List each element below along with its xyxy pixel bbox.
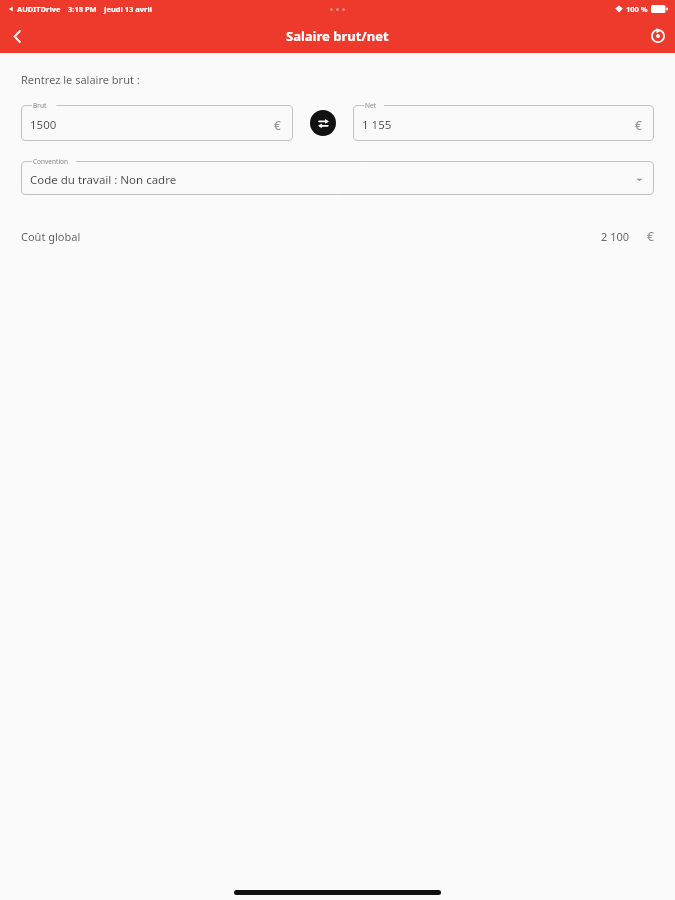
staticText: € — [274, 117, 281, 133]
staticText: 1500 — [30, 117, 57, 133]
staticText: Convention — [33, 157, 69, 166]
button[interactable]: Convention — [21, 161, 654, 195]
staticText: 1 155 — [362, 117, 392, 133]
button[interactable]: Retour — [0, 19, 34, 53]
staticText: € — [635, 117, 642, 133]
staticText: Code du travail : Non cadre — [30, 172, 177, 188]
staticText: Salaire brut/net — [286, 27, 389, 45]
staticText: 3:18 PM — [68, 4, 97, 14]
staticText: AUDITDrive — [17, 4, 61, 14]
staticText: Jeudi 13 avril — [104, 4, 152, 14]
staticText: Brut — [33, 101, 47, 110]
staticText: 100 % — [626, 4, 648, 14]
button[interactable]: Net — [353, 105, 654, 141]
button[interactable]: Inverser brut et net — [310, 110, 336, 136]
staticText: Net — [365, 101, 376, 110]
staticText: Rentrez le salaire brut : — [21, 72, 140, 87]
staticText: Coût global — [21, 229, 81, 244]
button[interactable]: Réinitialiser — [641, 19, 675, 53]
staticText: 2 100 — [601, 229, 630, 244]
staticText: € — [647, 228, 654, 244]
button[interactable]: Brut — [21, 105, 293, 141]
